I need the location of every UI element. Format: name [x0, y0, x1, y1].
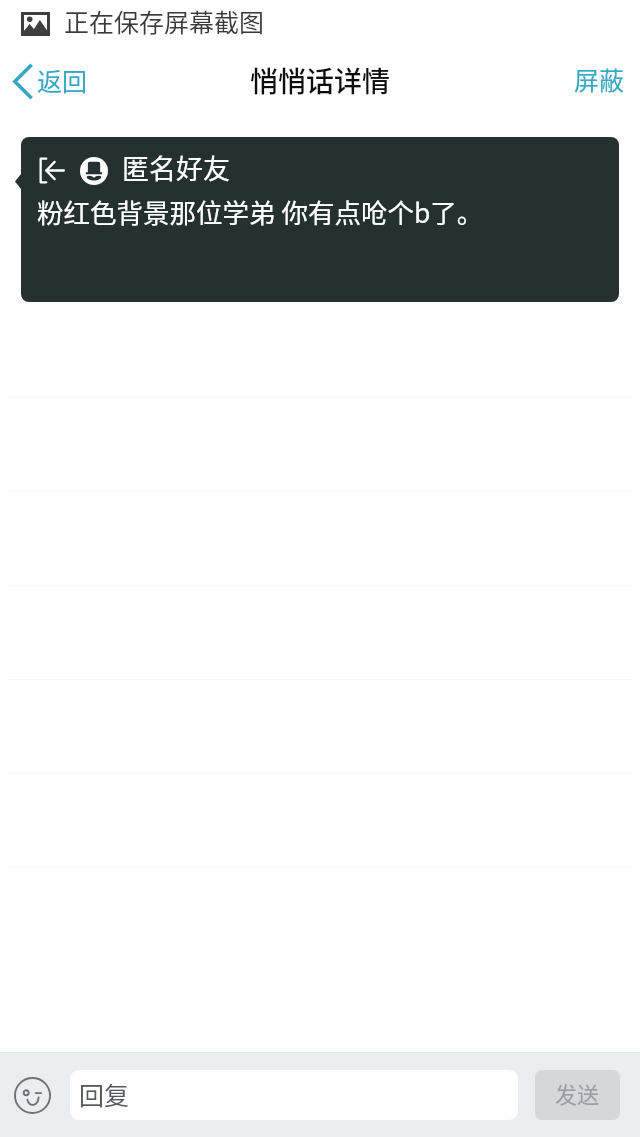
staticText: 发送 — [555, 1077, 600, 1109]
button[interactable]: 匿名好友 — [21, 137, 619, 302]
staticText: 返回 — [37, 62, 88, 98]
staticText: 粉红色背景那位学弟 你有点呛个b了。 — [37, 192, 484, 230]
button[interactable]: 回复 — [70, 1070, 518, 1120]
staticText: 悄悄话详情 — [250, 60, 391, 101]
staticText: 正在保存屏幕截图 — [64, 3, 265, 39]
button[interactable]: 屏蔽 — [558, 52, 640, 104]
button[interactable]: Emoji — [10, 1073, 54, 1117]
button[interactable]: 返回 — [0, 57, 102, 105]
staticText: 匿名好友 — [122, 148, 230, 187]
staticText: 回复 — [79, 1076, 130, 1112]
button[interactable]: 发送 — [535, 1070, 620, 1120]
